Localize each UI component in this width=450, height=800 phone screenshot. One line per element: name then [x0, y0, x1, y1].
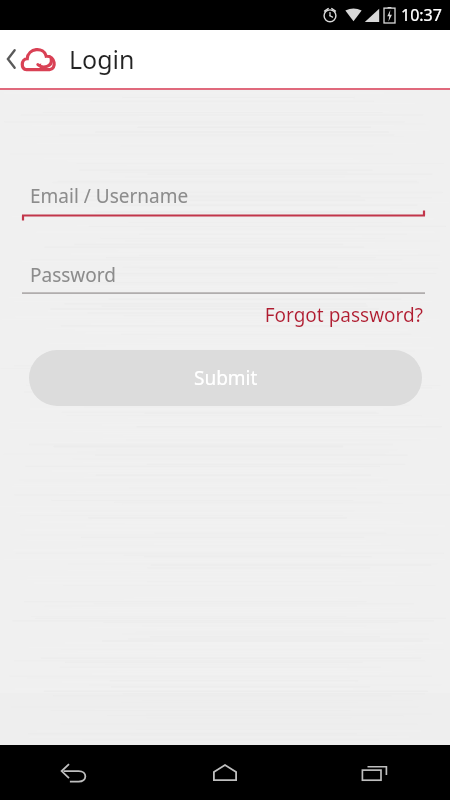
button[interactable]: Recent apps: [300, 745, 450, 800]
staticText: 10:37: [401, 4, 442, 26]
staticText: Password: [30, 262, 116, 288]
staticText: Submit: [194, 365, 258, 391]
staticText: Email / Username: [30, 183, 189, 209]
button[interactable]: Email / Username: [22, 178, 425, 214]
staticText: Login: [69, 42, 135, 76]
button[interactable]: Home: [150, 745, 300, 800]
button[interactable]: Forgot password?: [262, 299, 425, 331]
button[interactable]: Back: [0, 30, 62, 88]
button[interactable]: Submit: [29, 350, 422, 406]
staticText: Forgot password?: [264, 302, 423, 328]
button[interactable]: Back: [0, 745, 150, 800]
button[interactable]: Password: [22, 258, 425, 292]
